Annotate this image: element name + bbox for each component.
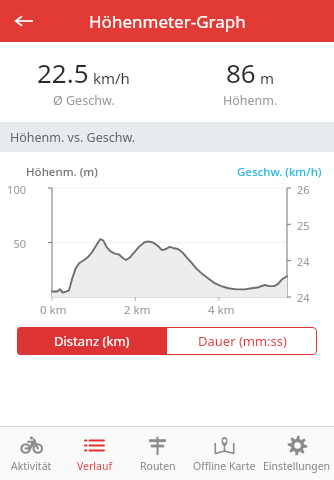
staticText: 4 km <box>208 302 235 318</box>
staticText: km/h <box>93 68 130 88</box>
staticText: Aktivität <box>11 459 52 473</box>
button[interactable]: Einstellungen <box>260 427 334 480</box>
staticText: Offline Karte <box>193 459 256 473</box>
staticText: Geschw. (km/h) <box>237 164 322 180</box>
staticText: 100 <box>0 182 26 197</box>
staticText: 24 <box>297 290 310 305</box>
staticText: 2 km <box>124 302 151 318</box>
button[interactable]: Back <box>6 3 42 39</box>
button[interactable]: Verlauf <box>63 427 126 480</box>
staticText: Höhenm. (m) <box>26 164 98 180</box>
staticText: m <box>260 68 275 88</box>
staticText: 22.5 <box>37 55 89 90</box>
staticText: Höhenmeter-Graph <box>89 10 246 33</box>
staticText: Dauer (mm:ss) <box>198 332 287 350</box>
staticText: 26 <box>297 182 310 197</box>
staticText: 24 <box>297 254 310 269</box>
staticText: 50 <box>0 236 26 251</box>
staticText: 86 <box>226 55 256 90</box>
staticText: Höhenm. <box>223 92 278 109</box>
button[interactable]: Routen <box>126 427 189 480</box>
button[interactable]: Distanz (km) <box>17 327 167 355</box>
staticText: Verlauf <box>77 459 113 473</box>
staticText: 0 km <box>40 302 67 318</box>
button[interactable]: Offline Karte <box>189 427 260 480</box>
staticText: 25 <box>297 218 310 233</box>
button[interactable]: Aktivität <box>0 427 63 480</box>
button[interactable]: Dauer (mm:ss) <box>167 327 317 355</box>
staticText: Ø Geschw. <box>53 92 115 109</box>
staticText: Einstellungen <box>263 459 331 473</box>
staticText: Routen <box>140 459 176 473</box>
staticText: Distanz (km) <box>54 332 130 350</box>
staticText: Höhenm. vs. Geschw. <box>10 129 136 146</box>
